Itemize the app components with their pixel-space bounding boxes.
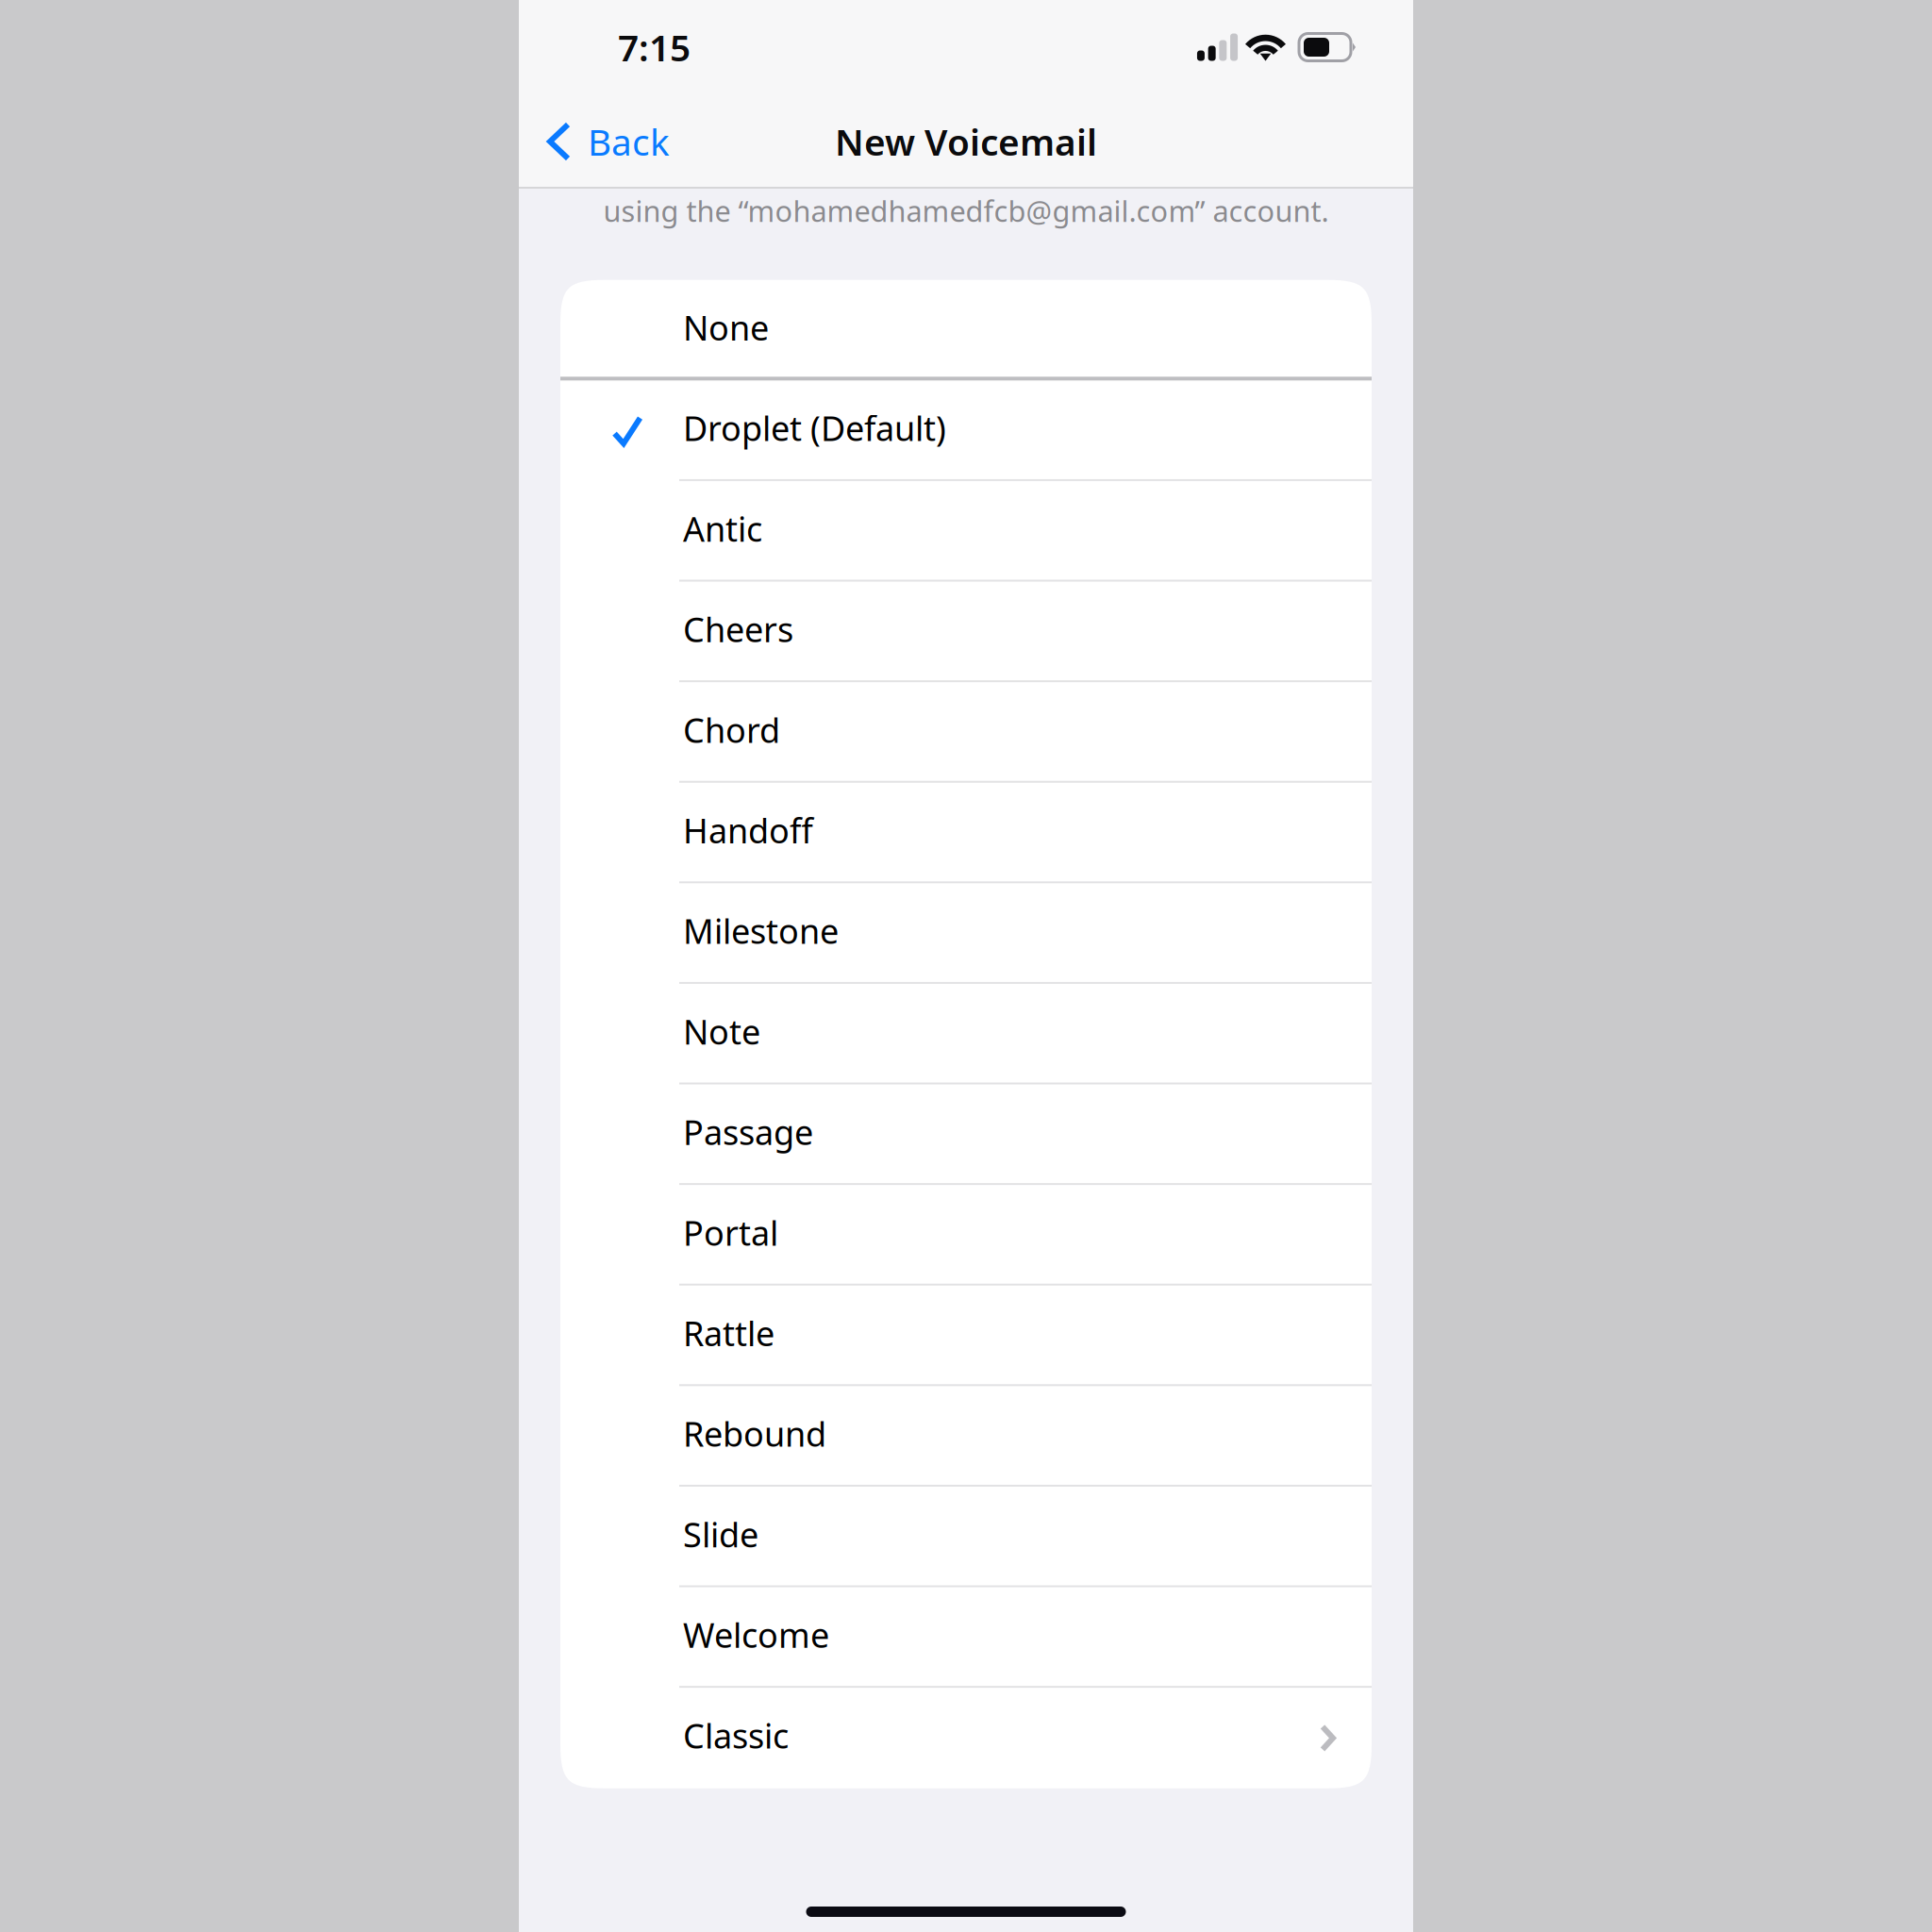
button[interactable]: Chord: [560, 682, 1372, 783]
staticText: Milestone: [683, 908, 839, 953]
button[interactable]: Rattle: [560, 1286, 1372, 1386]
staticText: Slide: [683, 1512, 758, 1557]
staticText: Note: [683, 1009, 760, 1054]
staticText: Antic: [683, 506, 762, 551]
staticText: using the “mohamedhamedfcb@gmail.com” ac…: [603, 192, 1329, 230]
staticText: Handoff: [683, 808, 813, 853]
staticText: Passage: [683, 1109, 813, 1154]
staticText: Rebound: [683, 1411, 826, 1456]
button[interactable]: Welcome: [560, 1587, 1372, 1688]
button[interactable]: Handoff: [560, 783, 1372, 883]
button[interactable]: Slide: [560, 1487, 1372, 1587]
staticText: Droplet (Default): [683, 405, 946, 450]
staticText: New Voicemail: [835, 117, 1097, 166]
button[interactable]: Portal: [560, 1185, 1372, 1286]
staticText: Classic: [683, 1713, 789, 1758]
button[interactable]: Rebound: [560, 1386, 1372, 1487]
staticText: Cheers: [683, 606, 793, 652]
button[interactable]: Classic: [560, 1688, 1372, 1788]
button[interactable]: Milestone: [560, 883, 1372, 984]
button[interactable]: Back: [519, 94, 692, 189]
staticText: Welcome: [683, 1612, 829, 1657]
staticText: Rattle: [683, 1310, 774, 1356]
button[interactable]: Note: [560, 984, 1372, 1084]
button[interactable]: Passage: [560, 1084, 1372, 1185]
staticText: Portal: [683, 1210, 778, 1255]
staticText: Chord: [683, 707, 780, 752]
staticText: 7:15: [618, 23, 691, 71]
button[interactable]: Cheers: [560, 582, 1372, 682]
button[interactable]: None: [560, 280, 1372, 380]
staticText: Back: [588, 117, 670, 166]
button[interactable]: Antic: [560, 481, 1372, 582]
staticText: None: [683, 305, 769, 350]
button[interactable]: Droplet (Default): [560, 380, 1372, 481]
